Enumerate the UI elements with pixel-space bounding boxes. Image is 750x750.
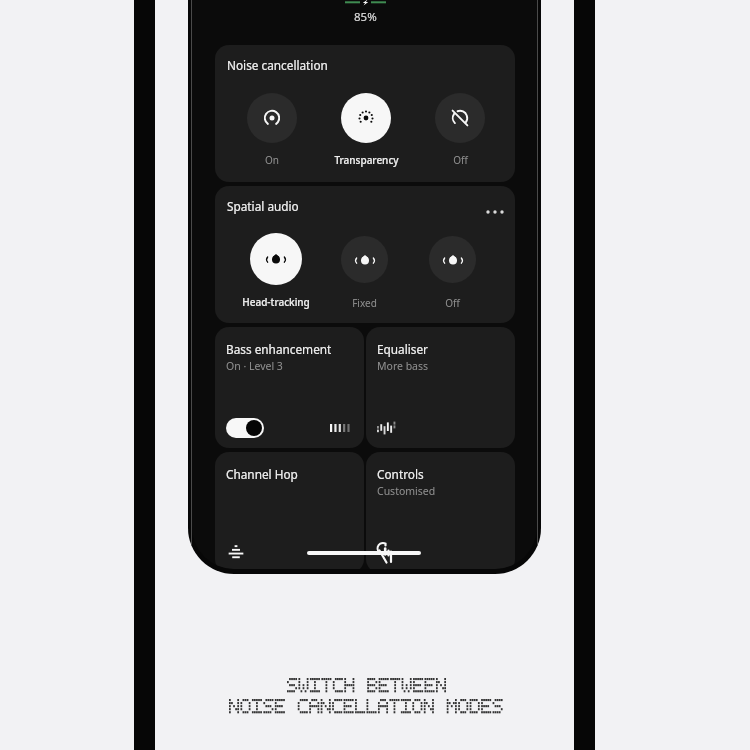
staticText: On · Level 3 xyxy=(226,359,283,373)
button[interactable]: Controls xyxy=(366,452,515,569)
staticText: On xyxy=(265,153,279,167)
button[interactable]: Transparency xyxy=(322,93,410,167)
staticText: Spatial audio xyxy=(227,198,299,214)
staticText: Channel Hop xyxy=(226,466,298,482)
staticText: Noise cancellation xyxy=(227,57,328,73)
button[interactable]: Off xyxy=(408,236,496,310)
staticText: Transparency xyxy=(334,153,399,167)
staticText: More bass xyxy=(377,359,429,373)
staticText: 85% xyxy=(354,9,377,25)
button[interactable]: Head-tracking xyxy=(232,233,320,309)
staticText: Fixed xyxy=(352,296,377,310)
staticText: Bass enhancement xyxy=(226,341,332,357)
button[interactable]: Channel Hop xyxy=(215,452,364,569)
staticText: Equaliser xyxy=(377,341,428,357)
staticText: Head-tracking xyxy=(242,295,310,309)
button[interactable]: More options xyxy=(483,200,507,224)
staticText: Off xyxy=(445,296,460,310)
staticText: Off xyxy=(453,153,468,167)
button[interactable]: Equaliser xyxy=(366,327,515,448)
button[interactable]: Bass enhancement xyxy=(215,327,364,448)
button[interactable]: Sound levels xyxy=(228,543,244,560)
button[interactable]: Off xyxy=(416,93,504,167)
button[interactable]: On xyxy=(228,93,316,167)
staticText: Controls xyxy=(377,466,424,482)
button[interactable]: Bass enhancement toggle xyxy=(226,418,264,438)
staticText: Customised xyxy=(377,484,436,498)
button[interactable]: Fixed xyxy=(320,236,408,310)
